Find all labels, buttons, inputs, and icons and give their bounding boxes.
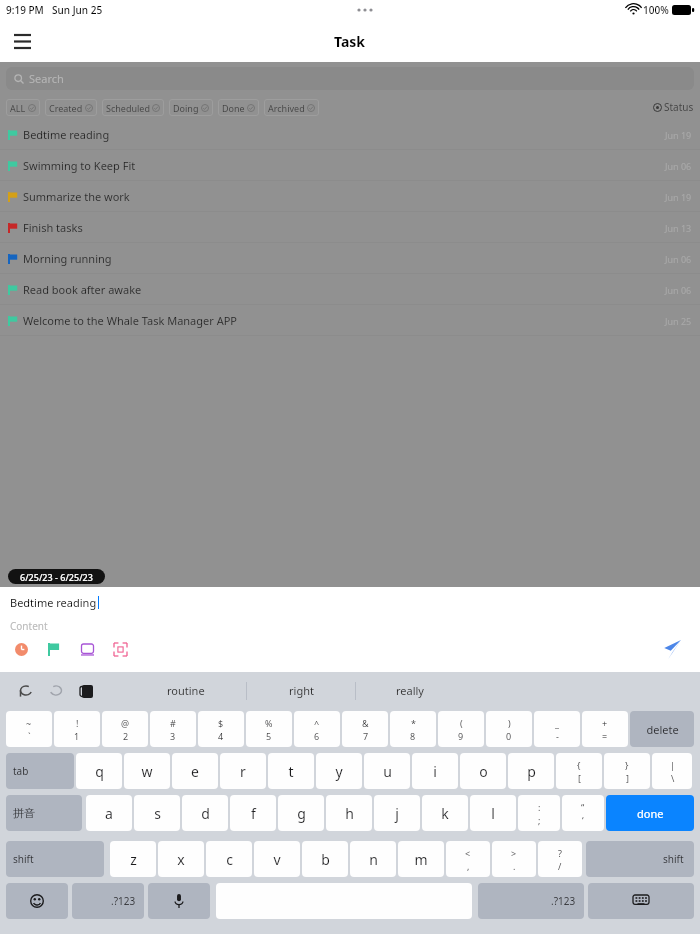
button[interactable]: Scheduled — [106, 99, 160, 116]
button[interactable]: t — [268, 753, 314, 789]
button[interactable]: v — [254, 841, 300, 877]
button[interactable]: Undo — [14, 679, 38, 703]
button[interactable]: y — [316, 753, 362, 789]
button[interactable]: “ — [562, 795, 604, 831]
button[interactable]: < — [446, 841, 490, 877]
button[interactable]: j — [374, 795, 420, 831]
staticText: > — [511, 847, 517, 859]
button[interactable]: tab — [6, 753, 74, 789]
button[interactable]: right — [247, 672, 355, 709]
staticText: done — [637, 806, 664, 821]
button[interactable]: Scan — [109, 638, 131, 660]
button[interactable]: Search — [6, 67, 694, 90]
button[interactable]: Redo — [44, 679, 68, 703]
button[interactable]: c — [206, 841, 252, 877]
button[interactable]: o — [460, 753, 506, 789]
button[interactable]: p — [508, 753, 554, 789]
button[interactable]: w — [124, 753, 170, 789]
button[interactable]: Emoji — [6, 883, 68, 919]
button[interactable]: Doing — [173, 99, 209, 116]
button[interactable]: Display — [76, 638, 98, 660]
button[interactable]: } — [604, 753, 650, 789]
button[interactable]: Send — [656, 634, 686, 664]
button[interactable]: * — [390, 711, 436, 747]
staticText: shift — [13, 852, 34, 866]
staticText: y — [335, 762, 343, 781]
staticText: Finish tasks — [23, 220, 83, 235]
button[interactable]: Archived — [268, 99, 315, 116]
staticText: | — [670, 759, 675, 771]
button[interactable]: Paste — [74, 679, 98, 703]
button[interactable]: Swimming to Keep Fit — [0, 150, 700, 181]
button[interactable]: shift — [6, 841, 104, 877]
button[interactable]: Morning running — [0, 243, 700, 274]
button[interactable]: $ — [198, 711, 244, 747]
button[interactable]: Bedtime reading — [0, 119, 700, 150]
button[interactable]: & — [342, 711, 388, 747]
button[interactable]: _ — [534, 711, 580, 747]
button[interactable]: # — [150, 711, 196, 747]
button[interactable]: ALL — [10, 99, 36, 116]
button[interactable]: s — [134, 795, 180, 831]
staticText: w — [141, 762, 153, 781]
button[interactable]: @ — [102, 711, 148, 747]
button[interactable]: d — [182, 795, 228, 831]
button[interactable]: z — [110, 841, 156, 877]
button[interactable]: a — [86, 795, 132, 831]
button[interactable]: e — [172, 753, 218, 789]
staticText: } — [625, 759, 629, 771]
button[interactable]: Summarize the work — [0, 181, 700, 212]
button[interactable]: Flag — [43, 638, 65, 660]
button[interactable]: routine — [126, 672, 246, 709]
button[interactable]: f — [230, 795, 276, 831]
button[interactable]: l — [470, 795, 516, 831]
button[interactable]: Welcome to the Whale Task Manager APP — [0, 305, 700, 336]
button[interactable]: ^ — [294, 711, 340, 747]
button[interactable]: Dictation — [148, 883, 210, 919]
button[interactable]: x — [158, 841, 204, 877]
button[interactable]: .?123 — [478, 883, 584, 919]
button[interactable]: Schedule — [10, 638, 32, 660]
button[interactable]: Menu — [6, 25, 38, 57]
button[interactable]: i — [412, 753, 458, 789]
staticText: routine — [167, 683, 205, 698]
button[interactable]: 拼音 — [6, 795, 82, 831]
staticText: Archived — [268, 102, 305, 114]
button[interactable]: m — [398, 841, 444, 877]
button[interactable]: Created — [49, 99, 93, 116]
button[interactable]: .?123 — [72, 883, 144, 919]
button[interactable]: done — [606, 795, 694, 831]
button[interactable]: Done — [222, 99, 255, 116]
button[interactable]: 6/25/23 - 6/25/23 — [20, 569, 93, 584]
button[interactable]: n — [350, 841, 396, 877]
button[interactable]: : — [518, 795, 560, 831]
button[interactable]: g — [278, 795, 324, 831]
button[interactable]: + — [582, 711, 628, 747]
button[interactable]: Status — [653, 100, 694, 114]
staticText: o — [479, 762, 488, 781]
button[interactable]: ( — [438, 711, 484, 747]
button[interactable]: u — [364, 753, 410, 789]
button[interactable]: % — [246, 711, 292, 747]
button[interactable]: r — [220, 753, 266, 789]
button[interactable]: { — [556, 753, 602, 789]
staticText: = — [602, 730, 608, 742]
button[interactable]: Read book after awake — [0, 274, 700, 305]
button[interactable]: | — [652, 753, 692, 789]
button[interactable]: q — [76, 753, 122, 789]
button[interactable]: h — [326, 795, 372, 831]
button[interactable]: Finish tasks — [0, 212, 700, 243]
button[interactable]: > — [492, 841, 536, 877]
button[interactable]: shift — [586, 841, 694, 877]
button[interactable]: really — [356, 672, 464, 709]
button[interactable]: k — [422, 795, 468, 831]
staticText: / — [558, 860, 562, 872]
button[interactable]: delete — [630, 711, 694, 747]
button[interactable]: b — [302, 841, 348, 877]
button[interactable]: Hide keyboard — [588, 883, 694, 919]
button[interactable]: ) — [486, 711, 532, 747]
button[interactable]: ? — [538, 841, 582, 877]
button[interactable]: ! — [54, 711, 100, 747]
button[interactable]: ~ — [6, 711, 52, 747]
